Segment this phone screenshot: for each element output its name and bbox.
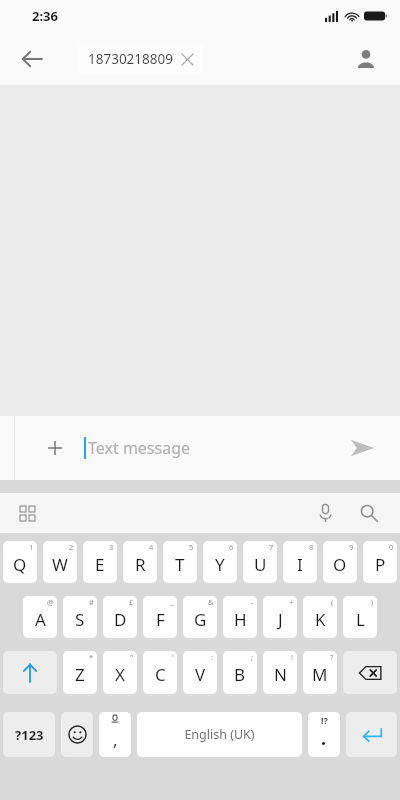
staticText: D: [114, 608, 127, 631]
staticText: I: [297, 553, 303, 576]
button[interactable]: Keyboard options: [8, 494, 46, 532]
staticText: ,: [113, 728, 118, 751]
button[interactable]: Contact details: [346, 39, 386, 79]
staticText: N: [274, 663, 287, 686]
staticText: K: [315, 608, 326, 631]
button[interactable]: Emoji: [61, 712, 93, 757]
staticText: Q: [13, 553, 27, 576]
button[interactable]: Comma, voice input: [99, 712, 131, 757]
staticText: English (UK): [184, 726, 255, 743]
button[interactable]: (: [303, 596, 337, 638]
button[interactable]: Shift: [3, 651, 57, 694]
button[interactable]: 1: [3, 541, 37, 583]
staticText: *: [89, 652, 94, 662]
button[interactable]: ?123: [3, 712, 55, 757]
button[interactable]: ): [343, 596, 377, 638]
staticText: F: [156, 608, 165, 631]
staticText: +: [289, 597, 294, 607]
staticText: 0: [389, 542, 394, 552]
staticText: ;: [251, 652, 254, 662]
staticText: A: [35, 608, 46, 631]
staticText: P: [375, 553, 386, 576]
staticText: -: [251, 597, 254, 607]
button[interactable]: -: [223, 596, 257, 638]
staticText: 5: [189, 542, 194, 552]
staticText: V: [195, 663, 206, 686]
staticText: C: [155, 663, 166, 686]
button[interactable]: ": [103, 651, 137, 694]
button[interactable]: +: [263, 596, 297, 638]
button[interactable]: 0: [363, 541, 397, 583]
staticText: M: [312, 663, 328, 686]
staticText: U: [254, 553, 267, 576]
button[interactable]: Enter: [346, 712, 397, 757]
staticText: 3: [109, 542, 114, 552]
button[interactable]: #: [63, 596, 97, 638]
button[interactable]: 8: [283, 541, 317, 583]
staticText: .: [321, 726, 327, 751]
button[interactable]: Send: [342, 428, 382, 468]
button[interactable]: English (UK): [137, 712, 302, 757]
button[interactable]: 6: [203, 541, 237, 583]
button[interactable]: &: [183, 596, 217, 638]
staticText: !?: [321, 714, 328, 726]
staticText: 6: [229, 542, 234, 552]
staticText: R: [135, 553, 146, 576]
staticText: T: [175, 553, 185, 576]
staticText: @: [47, 597, 54, 607]
staticText: #: [89, 597, 94, 607]
button[interactable]: Backspace: [343, 651, 397, 694]
button[interactable]: ?: [303, 651, 337, 694]
button[interactable]: 4: [123, 541, 157, 583]
button[interactable]: 2: [43, 541, 77, 583]
staticText: X: [115, 663, 125, 686]
button[interactable]: *: [63, 651, 97, 694]
button[interactable]: Add attachment: [38, 431, 72, 465]
button[interactable]: _: [143, 596, 177, 638]
staticText: Z: [75, 663, 85, 686]
staticText: E: [95, 553, 105, 576]
staticText: !: [291, 652, 294, 662]
button[interactable]: £: [103, 596, 137, 638]
staticText: L: [356, 608, 365, 631]
button[interactable]: Voice input: [306, 494, 344, 532]
staticText: 2:36: [32, 7, 58, 25]
staticText: ": [130, 652, 134, 662]
button[interactable]: Back: [12, 39, 52, 79]
staticText: 9: [349, 542, 354, 552]
staticText: _: [170, 597, 174, 607]
staticText: 18730218809: [88, 50, 173, 68]
staticText: G: [194, 608, 207, 631]
staticText: B: [234, 663, 246, 686]
button[interactable]: @: [23, 596, 57, 638]
staticText: &: [208, 597, 214, 607]
button[interactable]: Search: [350, 494, 388, 532]
button[interactable]: 3: [83, 541, 117, 583]
button[interactable]: 9: [323, 541, 357, 583]
staticText: H: [234, 608, 247, 631]
staticText: Text message: [88, 437, 191, 459]
staticText: ?: [330, 652, 334, 662]
staticText: 1: [29, 542, 34, 552]
staticText: 8: [309, 542, 314, 552]
staticText: ): [371, 597, 374, 607]
button[interactable]: :: [183, 651, 217, 694]
button[interactable]: ;: [223, 651, 257, 694]
staticText: J: [278, 608, 283, 631]
button[interactable]: 18730218809: [78, 44, 203, 74]
staticText: 2: [69, 542, 74, 552]
staticText: S: [75, 608, 85, 631]
staticText: :: [211, 652, 214, 662]
staticText: W: [52, 553, 68, 576]
staticText: ?123: [15, 726, 44, 744]
button[interactable]: ': [143, 651, 177, 694]
staticText: O: [333, 553, 347, 576]
staticText: (: [331, 597, 334, 607]
button[interactable]: 7: [243, 541, 277, 583]
staticText: £: [129, 597, 134, 607]
button[interactable]: !: [263, 651, 297, 694]
staticText: ': [172, 652, 174, 662]
button[interactable]: 5: [163, 541, 197, 583]
staticText: 7: [269, 542, 274, 552]
button[interactable]: !?: [308, 712, 340, 757]
